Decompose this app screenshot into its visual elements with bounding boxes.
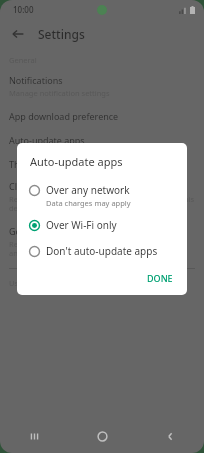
staticText: Auto-update apps	[30, 154, 123, 169]
button[interactable]: Notifications	[0, 74, 204, 98]
staticText: App download preference	[9, 110, 119, 122]
button[interactable]: DONE	[141, 269, 179, 287]
button[interactable]: App download preference	[0, 110, 204, 122]
button[interactable]: Clear local search history	[0, 180, 204, 213]
button[interactable]: Recent apps	[0, 420, 68, 453]
staticText: Theme	[9, 158, 39, 170]
button[interactable]: Back	[136, 420, 204, 453]
button[interactable]: Google Play preferences	[0, 225, 204, 258]
button[interactable]: Back	[7, 23, 29, 45]
staticText: DONE	[147, 272, 173, 284]
staticText: Over any network	[46, 183, 130, 197]
staticText: Data charges may apply	[46, 198, 131, 208]
staticText: Notifications	[9, 74, 63, 86]
staticText: General	[9, 55, 37, 65]
staticText: Auto-update apps	[9, 134, 85, 146]
staticText: User controls	[9, 278, 56, 288]
staticText: Settings	[38, 26, 85, 42]
staticText: Don't auto-update apps	[46, 244, 158, 258]
button[interactable]: Theme	[0, 158, 204, 170]
staticText: Remove history in your wishlist, the Bet…	[9, 239, 195, 258]
staticText: Google Play preferences	[9, 225, 112, 237]
button[interactable]: Don't auto-update apps	[17, 242, 187, 260]
staticText: Over Wi-Fi only	[46, 218, 117, 232]
button[interactable]: Auto-update apps	[0, 134, 204, 146]
staticText: Remove searches that you have performed …	[9, 194, 195, 213]
button[interactable]: Home	[68, 420, 136, 453]
staticText: Manage notification settings	[9, 88, 110, 98]
button[interactable]: Over any network	[17, 181, 187, 210]
staticText: 10:00	[13, 4, 34, 15]
staticText: Clear local search history	[9, 180, 115, 192]
button[interactable]: Over Wi-Fi only	[17, 216, 187, 234]
